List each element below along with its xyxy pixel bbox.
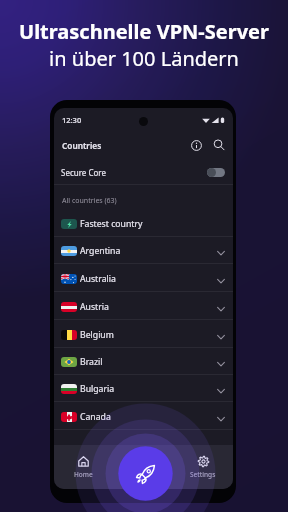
staticText: Belgium [80, 329, 114, 341]
button[interactable]: Settings [173, 445, 233, 489]
staticText: 12:30 [62, 115, 82, 125]
staticText: Countries [62, 140, 102, 151]
staticText: Ultraschnelle VPN-Server [19, 18, 269, 45]
staticText: Austria [80, 301, 109, 313]
button[interactable]: Information [186, 134, 206, 154]
staticText: Settings [190, 470, 216, 479]
staticText: Fastest country [80, 218, 143, 230]
staticText: in über 100 Ländern [49, 45, 239, 72]
button[interactable]: Secure Core [54, 158, 233, 184]
button[interactable]: Connect [118, 446, 172, 500]
staticText: Canada [80, 411, 111, 423]
button[interactable]: Austria [54, 292, 233, 319]
staticText: Argentina [80, 245, 121, 257]
staticText: All countries (63) [62, 196, 117, 206]
button[interactable]: Brazil [54, 348, 233, 374]
button[interactable]: Argentina [54, 237, 233, 263]
button[interactable]: Bulgaria [54, 375, 233, 401]
staticText: Brazil [80, 356, 103, 368]
staticText: Home [74, 470, 93, 479]
button[interactable]: Canada [54, 402, 233, 429]
staticText: Bulgaria [80, 383, 115, 395]
staticText: Australia [80, 273, 116, 285]
button[interactable]: Search [209, 134, 229, 154]
button[interactable]: Belgium [54, 320, 233, 347]
button[interactable]: Fastest country [54, 210, 233, 236]
button[interactable]: Home [54, 445, 113, 489]
button[interactable]: Australia [54, 264, 233, 291]
staticText: Secure Core [61, 167, 106, 178]
